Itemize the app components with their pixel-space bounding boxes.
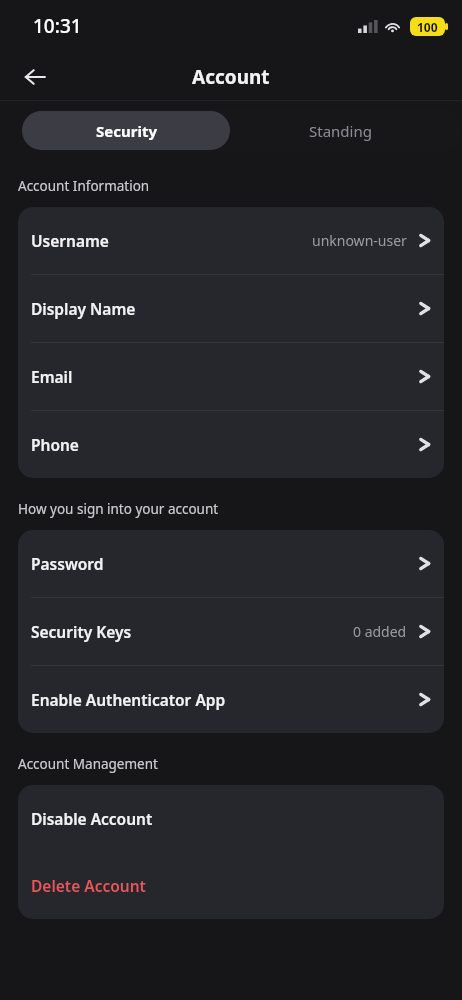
button[interactable]: Password xyxy=(18,530,444,597)
staticText: Password xyxy=(31,553,104,574)
staticText: Email xyxy=(31,366,73,387)
staticText: 0 added xyxy=(353,622,407,641)
staticText: Phone xyxy=(31,434,79,455)
staticText: Security Keys xyxy=(31,621,132,642)
button[interactable]: Phone xyxy=(18,411,444,478)
button[interactable]: Enable Authenticator App xyxy=(18,666,444,733)
button[interactable]: Security Keys xyxy=(18,598,444,665)
staticText: Account xyxy=(192,64,270,90)
staticText: Standing xyxy=(309,121,372,141)
button[interactable]: Email xyxy=(18,343,444,410)
staticText: Disable Account xyxy=(31,808,153,829)
staticText: 10:31 xyxy=(33,13,82,39)
staticText: Account Management xyxy=(18,755,158,773)
button[interactable]: Username xyxy=(18,207,444,274)
staticText: Security xyxy=(96,121,157,141)
button[interactable]: Disable Account xyxy=(18,785,444,852)
staticText: How you sign into your account xyxy=(18,500,219,518)
button[interactable]: Back xyxy=(12,54,58,100)
button[interactable]: Display Name xyxy=(18,275,444,342)
button[interactable]: Standing xyxy=(233,109,447,152)
staticText: Username xyxy=(31,230,109,251)
button[interactable]: Security xyxy=(22,111,230,150)
staticText: Account Information xyxy=(18,177,150,195)
staticText: 100 xyxy=(417,19,438,35)
staticText: Enable Authenticator App xyxy=(31,689,226,710)
staticText: Display Name xyxy=(31,298,136,319)
staticText: unknown-user xyxy=(312,231,407,250)
button[interactable]: Delete Account xyxy=(18,852,444,919)
staticText: Delete Account xyxy=(31,875,146,896)
